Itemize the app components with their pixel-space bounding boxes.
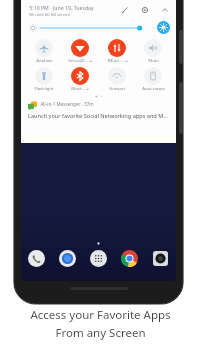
button[interactable]: All-in-1 Messenger · 37m [28,101,169,110]
button[interactable]: All apps [90,250,107,267]
staticText: Innov20... [68,58,88,64]
staticText: Hotspot [109,86,125,92]
staticText: All-in-1 Messenger · 37m [40,101,94,107]
staticText: Auto-rotate [142,86,165,92]
button[interactable]: Airplane [27,39,61,64]
button[interactable]: Hotspot [100,67,134,92]
button[interactable]: Phone [28,250,45,267]
staticText: 5:10 PM · June 19, Tuesday [29,4,94,11]
staticText: Flashlight [34,86,54,92]
button[interactable]: Chrome [121,250,138,267]
button[interactable]: Innov20... [63,39,97,64]
button[interactable]: Auto brightness [157,21,170,34]
button[interactable]: Flashlight [27,67,61,92]
staticText: Mute [148,58,159,64]
button[interactable] [40,23,149,33]
staticText: Airplane [36,58,53,64]
button[interactable]: Camera [152,250,169,267]
staticText: Nil until AC Nil service [29,12,70,17]
staticText: Access your Favorite Apps [30,307,171,323]
staticText: Launch your favorite Social Networking a… [28,112,169,120]
button[interactable]: NE.an ... [100,39,134,64]
button[interactable]: Auto-rotate [136,67,170,92]
staticText: From any Screen [55,325,146,341]
button[interactable]: Edit [119,4,130,15]
button[interactable]: Bluet... [63,67,97,92]
button[interactable]: Messages [59,250,76,267]
button[interactable]: Settings [139,4,150,15]
staticText: NE.an ... [107,58,124,64]
staticText: Bluet... [71,86,85,92]
button[interactable]: Mute [136,39,170,64]
button[interactable]: Collapse [159,4,170,15]
